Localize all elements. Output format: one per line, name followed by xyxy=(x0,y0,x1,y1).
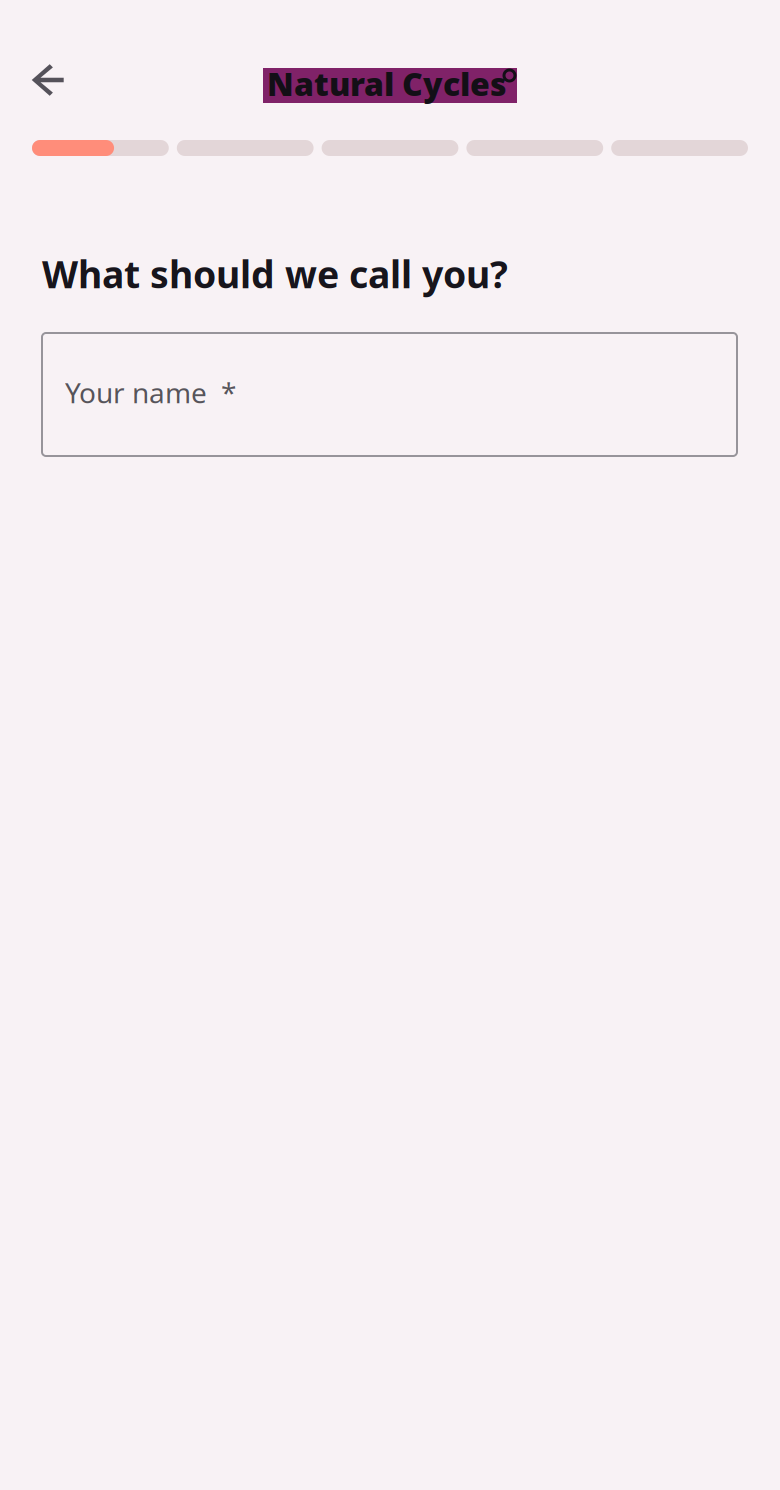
staticText: * xyxy=(221,374,236,411)
staticText: Your name xyxy=(65,374,207,411)
staticText: Natural Cycles xyxy=(267,62,507,105)
button[interactable]: Your name xyxy=(42,333,737,456)
button[interactable]: Back xyxy=(16,48,80,112)
staticText: What should we call you? xyxy=(42,249,508,299)
